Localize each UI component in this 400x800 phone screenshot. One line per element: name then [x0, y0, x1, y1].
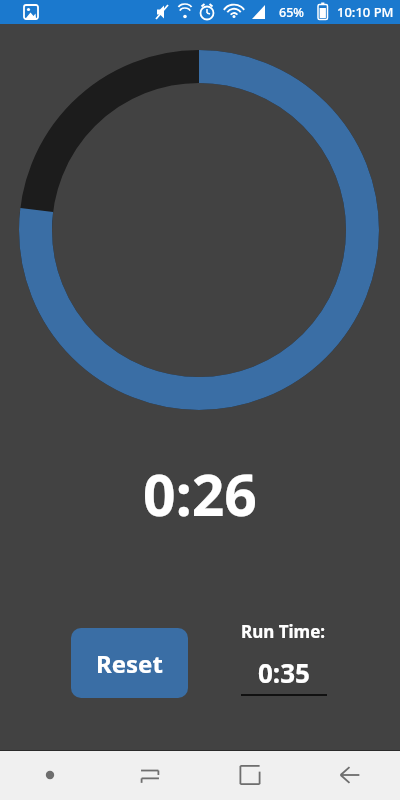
button[interactable]: Recents	[200, 750, 300, 800]
button[interactable]: Back	[300, 750, 400, 800]
staticText: 10:10 PM	[337, 3, 394, 21]
staticText: Run Time:	[241, 620, 326, 643]
staticText: 0:35	[258, 655, 310, 690]
button[interactable]: Switch apps	[100, 750, 200, 800]
staticText: Reset	[96, 647, 163, 680]
staticText: 0:26	[0, 455, 400, 533]
button[interactable]: Menu	[0, 750, 100, 800]
button[interactable]: Reset	[71, 628, 188, 698]
staticText: 65%	[279, 4, 304, 21]
